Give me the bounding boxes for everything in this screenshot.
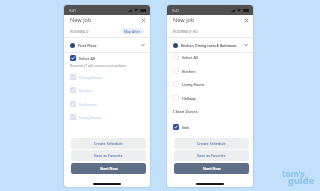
- button[interactable]: Hallway: [167, 92, 253, 104]
- staticText: Living Room: [182, 82, 204, 87]
- staticText: Kitchen, Dining room & Bathroom: [181, 43, 237, 47]
- staticText: Bathroom: [79, 102, 97, 107]
- staticText: Sink: [182, 125, 190, 130]
- staticText: Hallway: [182, 96, 197, 101]
- staticText: Kitchen: [182, 69, 196, 74]
- button[interactable]: Start Now: [174, 163, 249, 174]
- button[interactable]: Kitchen, Dining room & Bathroom: [167, 39, 253, 51]
- button[interactable]: Save as Favorite: [174, 150, 249, 161]
- staticText: ROOMBA J7: [70, 29, 89, 34]
- staticText: 9:41: [172, 8, 180, 13]
- button[interactable]: Map After: [121, 28, 144, 34]
- button[interactable]: Create Schedule: [71, 138, 146, 149]
- button[interactable]: Sink: [167, 121, 253, 133]
- staticText: First Floor: [78, 43, 97, 48]
- staticText: tom's: [282, 168, 305, 179]
- staticText: New job: [70, 16, 92, 24]
- staticText: Select All: [182, 55, 199, 60]
- staticText: Clean Zones: [173, 109, 198, 115]
- staticText: Kitchen: [79, 88, 93, 93]
- button[interactable]: Kitchen: [64, 84, 150, 96]
- button[interactable]: Bathroom: [64, 98, 150, 110]
- button[interactable]: First Floor: [64, 39, 150, 51]
- staticText: ROOMBA J7 HD: [173, 29, 198, 34]
- button[interactable]: Close: [140, 17, 147, 24]
- button[interactable]: Save as Favorite: [71, 150, 146, 161]
- staticText: Living Room: [79, 115, 101, 120]
- button[interactable]: Living Room: [64, 111, 150, 123]
- button[interactable]: Start Now: [71, 163, 146, 174]
- staticText: Roomba j7 will vacuum everywhere: [70, 63, 127, 68]
- staticText: 9:41: [69, 8, 77, 13]
- staticText: New job: [173, 16, 195, 24]
- staticText: Save as Favorite: [197, 153, 226, 158]
- staticText: Select All: [79, 56, 96, 61]
- staticText: Start Now: [203, 166, 221, 171]
- button[interactable]: Select All: [167, 51, 253, 63]
- staticText: Dining Room: [79, 75, 102, 80]
- staticText: guide: [288, 174, 315, 187]
- button[interactable]: Living Room: [167, 78, 253, 90]
- staticText: Map After: [124, 29, 141, 34]
- button[interactable]: Close: [243, 17, 250, 24]
- staticText: Start Now: [100, 166, 118, 171]
- button[interactable]: Create Schedule: [174, 138, 249, 149]
- staticText: Create Schedule: [197, 141, 226, 146]
- button[interactable]: Select All: [64, 52, 150, 64]
- staticText: Save as Favorite: [94, 153, 123, 158]
- button[interactable]: Kitchen: [167, 65, 253, 77]
- button[interactable]: Dining Room: [64, 71, 150, 83]
- staticText: Create Schedule: [94, 141, 123, 146]
